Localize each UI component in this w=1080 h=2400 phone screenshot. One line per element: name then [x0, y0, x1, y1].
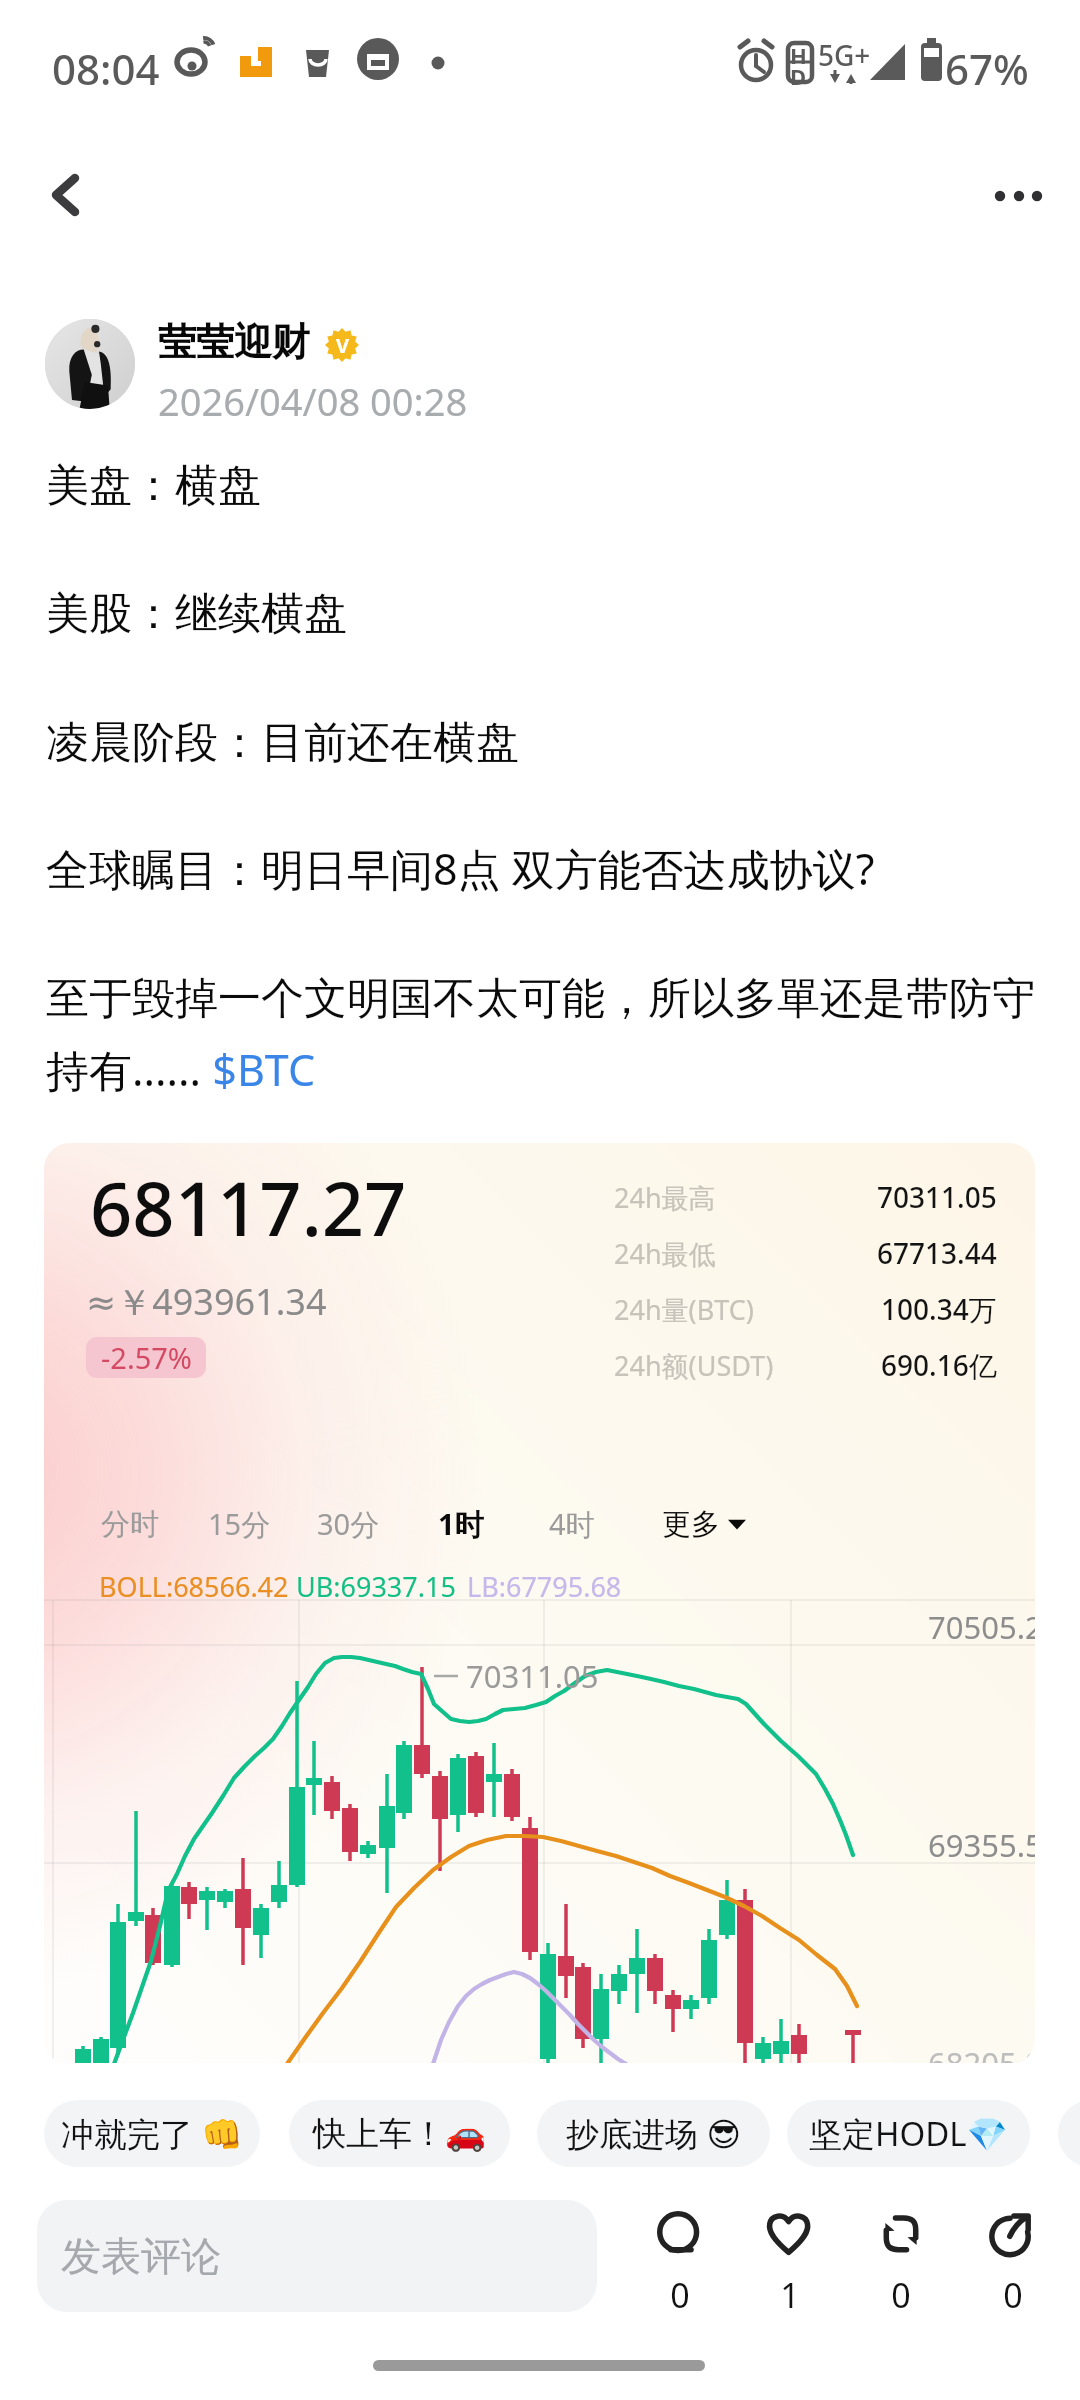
staticText: UB:69337.15 [296, 1568, 456, 1605]
staticText: 70311.05 [877, 1178, 997, 1216]
staticText: 70311.05 [466, 1655, 599, 1697]
button[interactable] [45, 319, 135, 409]
button[interactable]: 莹莹迎财 [158, 318, 310, 366]
button[interactable]: Comment [626, 2211, 734, 2318]
staticText: 30分 [317, 1504, 380, 1544]
staticText: BOLL:68566.42 [99, 1568, 289, 1605]
button[interactable]: 快上车！🚗 [289, 2100, 510, 2167]
staticText: 发表评论 [61, 2231, 221, 2281]
staticText: 24h量(BTC) [614, 1291, 754, 1328]
staticText: LB:67795.68 [467, 1568, 622, 1605]
staticText: 24h最高 [614, 1179, 716, 1216]
button[interactable]: 冲就完了 👊 [44, 2100, 260, 2167]
button[interactable]: 抄底进场 😎 [537, 2100, 770, 2167]
staticText: 15分 [208, 1504, 271, 1544]
staticText: 美股：继续横盘 [46, 587, 347, 641]
staticText: 快上车！🚗 [313, 2113, 487, 2155]
staticText: 68117.27 [90, 1157, 407, 1258]
button[interactable]: Back [20, 148, 116, 244]
staticText: 5G+ [818, 36, 871, 74]
staticText: 美盘：横盘 [46, 459, 261, 513]
button[interactable]: 30分 [317, 1499, 380, 1549]
button[interactable]: 更多 [662, 1499, 746, 1549]
button[interactable]: More options [966, 152, 1054, 240]
staticText: 分时 [101, 1506, 159, 1543]
staticText: 0 [1003, 2272, 1023, 2318]
staticText: 0 [891, 2272, 911, 2318]
staticText: -2.57% [101, 1338, 192, 1377]
staticText: 67% [945, 40, 1029, 97]
staticText: 100.34万 [881, 1290, 997, 1328]
staticText: 至于毁掉一个文明国不太可能，所以多單还是带防守持有...... $BTC [46, 972, 1042, 1099]
staticText: 4时 [549, 1504, 595, 1544]
staticText: 坚定HODL💎 [809, 2111, 1008, 2156]
button[interactable]: 1时 [438, 1499, 484, 1549]
staticText: ≈￥493961.34 [86, 1277, 327, 1326]
button[interactable]: 分时 [101, 1499, 159, 1549]
staticText: 24h额(USDT) [614, 1347, 774, 1384]
staticText: H [790, 40, 807, 70]
staticText: D [790, 61, 807, 91]
button[interactable]: 再来 [1058, 2100, 1080, 2167]
staticText: 24h最低 [614, 1235, 716, 1272]
button[interactable]: 坚定HODL💎 [787, 2100, 1030, 2167]
staticText: 冲就完了 👊 [61, 2111, 243, 2156]
staticText: 更多 [662, 1506, 720, 1543]
button[interactable]: 发表评论 [37, 2200, 597, 2312]
button[interactable]: 15分 [208, 1499, 271, 1549]
button[interactable]: Like [736, 2211, 844, 2318]
button[interactable]: Repost [847, 2211, 955, 2318]
staticText: 凌晨阶段：目前还在横盘 [46, 716, 519, 770]
button[interactable]: 68117.27 [44, 1143, 1035, 2065]
staticText: 69355.58 [928, 1824, 1035, 1866]
staticText: 67713.44 [877, 1234, 997, 1272]
staticText: 2026/04/08 00:28 [158, 375, 468, 427]
button[interactable]: 4时 [549, 1499, 595, 1549]
staticText: 抄底进场 😎 [566, 2111, 741, 2156]
staticText: 1 [780, 2272, 800, 2318]
staticText: 全球瞩目：明日早间8点 双方能否达成协议? [46, 839, 875, 898]
staticText: 08:04 [52, 40, 160, 97]
staticText: 1时 [438, 1504, 484, 1544]
staticText: 0 [670, 2272, 690, 2318]
staticText: 68205.87 [928, 2042, 1035, 2065]
button[interactable]: Share [959, 2211, 1067, 2318]
staticText: 70505.29 [928, 1606, 1035, 1648]
staticText: 690.16亿 [881, 1346, 997, 1384]
staticText: V [336, 332, 349, 359]
